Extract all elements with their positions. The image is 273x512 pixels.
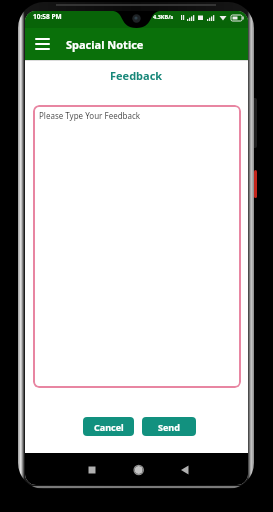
button[interactable]	[100, 453, 174, 485]
button[interactable]: Please Type Your Feedback	[33, 105, 241, 388]
button[interactable]: Cancel	[83, 417, 134, 436]
button[interactable]: Send	[142, 417, 196, 436]
button[interactable]	[35, 38, 57, 54]
staticText: Send	[158, 421, 180, 433]
staticText: Please Type Your Feedback	[39, 110, 141, 121]
staticText: Spacial Notice	[66, 37, 144, 52]
button[interactable]	[25, 453, 100, 485]
staticText: Cancel	[94, 421, 124, 433]
staticText: 10:58 PM	[33, 12, 62, 21]
staticText: Feedback	[110, 68, 163, 83]
button[interactable]	[174, 453, 248, 485]
staticText: 4.3KB/s	[153, 13, 174, 20]
